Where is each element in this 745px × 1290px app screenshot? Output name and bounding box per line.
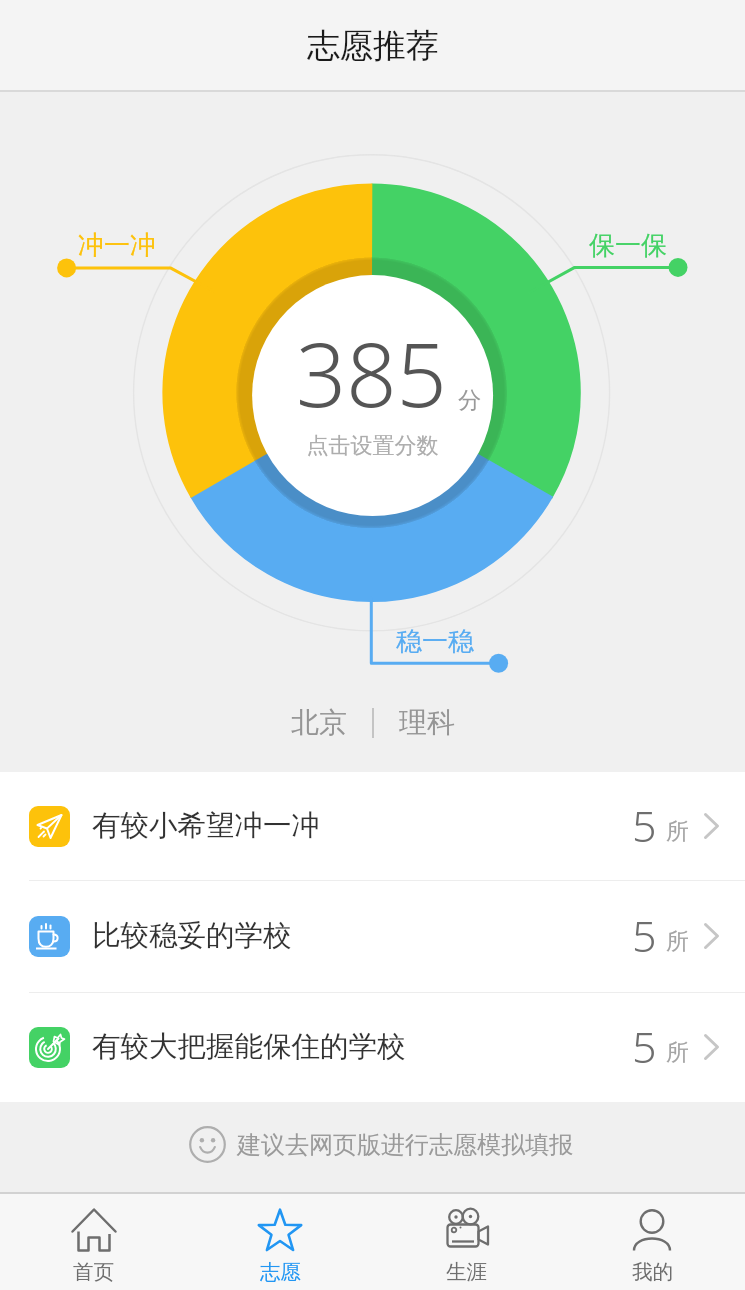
staticText: 志愿 — [260, 1259, 301, 1285]
staticText: 稳一稳 — [396, 625, 474, 658]
staticText: 志愿推荐 — [307, 25, 439, 67]
staticText: 北京 — [291, 705, 347, 740]
staticText: 建议去网页版进行志愿模拟填报 — [237, 1130, 573, 1160]
staticText: 5 — [632, 796, 657, 855]
button[interactable]: 比较稳妥的学校 — [0, 880, 745, 992]
staticText: 分 — [458, 386, 481, 415]
button[interactable]: 理科 — [387, 699, 467, 746]
staticText: 我的 — [632, 1259, 673, 1285]
staticText: 首页 — [73, 1259, 114, 1285]
staticText: 理科 — [399, 705, 455, 740]
staticText: 所 — [666, 927, 689, 956]
staticText: 冲一冲 — [78, 229, 156, 262]
staticText: 5 — [632, 906, 657, 965]
button[interactable]: 有较大把握能保住的学校 — [0, 992, 745, 1102]
button[interactable]: 志愿 — [187, 1194, 373, 1290]
staticText: 保一保 — [589, 229, 667, 262]
staticText: 所 — [666, 817, 689, 846]
button[interactable]: 有较小希望冲一冲 — [0, 772, 745, 880]
button[interactable]: 北京 — [279, 699, 359, 746]
button[interactable]: 我的 — [559, 1194, 745, 1290]
staticText: 有较小希望冲一冲 — [92, 808, 320, 844]
staticText: 5 — [632, 1017, 657, 1076]
button[interactable]: 建议去网页版进行志愿模拟填报 — [0, 1102, 745, 1192]
staticText: 点击设置分数 — [252, 432, 493, 460]
staticText: 385 — [296, 313, 447, 433]
staticText: 生涯 — [446, 1259, 487, 1285]
staticText: 所 — [666, 1038, 689, 1067]
staticText: 有较大把握能保住的学校 — [92, 1029, 406, 1065]
button[interactable]: 点击设置分数 — [252, 275, 493, 516]
button[interactable]: 首页 — [0, 1194, 187, 1290]
button[interactable]: 生涯 — [373, 1194, 559, 1290]
staticText: 比较稳妥的学校 — [92, 918, 292, 954]
